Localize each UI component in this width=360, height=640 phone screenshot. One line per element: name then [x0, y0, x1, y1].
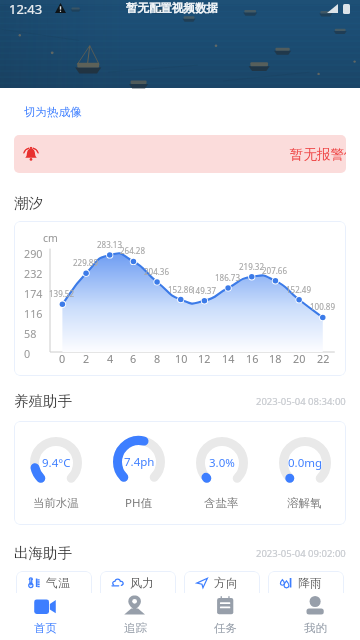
staticText: 283.13 [97, 239, 123, 250]
staticText: 219.32 [239, 261, 265, 272]
staticText: 22 [317, 351, 330, 366]
staticText: 任务 [214, 621, 237, 635]
button[interactable]: 首页 [0, 593, 90, 640]
staticText: 16 [246, 351, 259, 366]
staticText: 58 [24, 326, 37, 341]
staticText: 2 [83, 351, 90, 366]
staticText: 风力 [130, 575, 154, 590]
button[interactable]: 9.4°C [14, 421, 97, 525]
button[interactable]: 0.0mg [263, 421, 346, 525]
other: 追踪 [124, 596, 146, 616]
staticText: 暂无报警信息 [290, 146, 346, 163]
button[interactable]: 切为热成像 [24, 105, 82, 119]
staticText: 气温 [46, 575, 70, 590]
staticText: 10 [175, 351, 188, 366]
staticText: 9.4°C [42, 455, 71, 471]
staticText: 18 [269, 351, 282, 366]
other: 任务 [214, 596, 236, 616]
staticText: 当前水温 [33, 496, 79, 510]
staticText: 229.89 [73, 257, 99, 268]
staticText: 养殖助手 [14, 392, 72, 410]
staticText: 3.0% [209, 455, 235, 471]
staticText: 8 [154, 351, 161, 366]
staticText: 追踪 [124, 621, 147, 635]
staticText: 264.28 [120, 245, 146, 256]
staticText: 152.49 [286, 284, 312, 295]
staticText: 方向 [214, 575, 238, 590]
staticText: 12:43 [9, 0, 43, 16]
staticText: 174 [24, 286, 43, 301]
staticText: 4 [107, 351, 114, 366]
staticText: PH值 [125, 495, 152, 511]
staticText: 0 [59, 351, 66, 366]
staticText: 204.36 [144, 266, 170, 277]
staticText: 232 [24, 266, 43, 281]
button[interactable]: 风力 [100, 571, 176, 629]
staticText: 149.37 [191, 285, 217, 296]
button[interactable]: 降雨 [268, 571, 344, 629]
staticText: 20 [293, 351, 306, 366]
staticText: 186.73 [215, 272, 241, 283]
staticText: 首页 [34, 621, 57, 635]
button[interactable]: 任务 [180, 593, 270, 640]
button[interactable]: 3.0% [180, 421, 263, 525]
staticText: 0 [24, 346, 31, 361]
button[interactable]: 报警 [14, 135, 346, 173]
other: 报警 [23, 146, 39, 162]
staticText: 7.4ph [124, 454, 155, 470]
staticText: 12 [198, 351, 211, 366]
staticText: 出海助手 [14, 544, 72, 562]
button[interactable]: 气温 [16, 571, 92, 629]
staticText: 降雨 [298, 575, 322, 590]
staticText: 290 [24, 246, 43, 261]
staticText: 116 [24, 306, 43, 321]
staticText: 潮汐 [14, 194, 43, 212]
staticText: 2023-05-04 09:02:00 [256, 547, 346, 560]
staticText: cm [43, 231, 58, 245]
staticText: 含盐率 [204, 496, 239, 510]
other: 我的 [304, 596, 326, 616]
staticText: 6 [130, 351, 137, 366]
staticText: 暂无配置视频数据 [126, 1, 218, 15]
staticText: 2023-05-04 08:34:00 [256, 395, 346, 408]
button[interactable]: 追踪 [90, 593, 180, 640]
button[interactable]: 我的 [270, 593, 360, 640]
staticText: 我的 [304, 621, 327, 635]
staticText: 207.66 [262, 265, 288, 276]
staticText: 溶解氧 [287, 496, 322, 510]
staticText: 100.89 [310, 301, 336, 312]
other: 首页 [34, 596, 56, 616]
staticText: 14 [222, 351, 235, 366]
staticText: 139.52 [49, 288, 75, 299]
staticText: 152.86 [168, 284, 194, 295]
button[interactable]: 7.4ph [97, 421, 180, 525]
staticText: 0.0mg [288, 455, 323, 471]
button[interactable]: 方向 [184, 571, 260, 629]
